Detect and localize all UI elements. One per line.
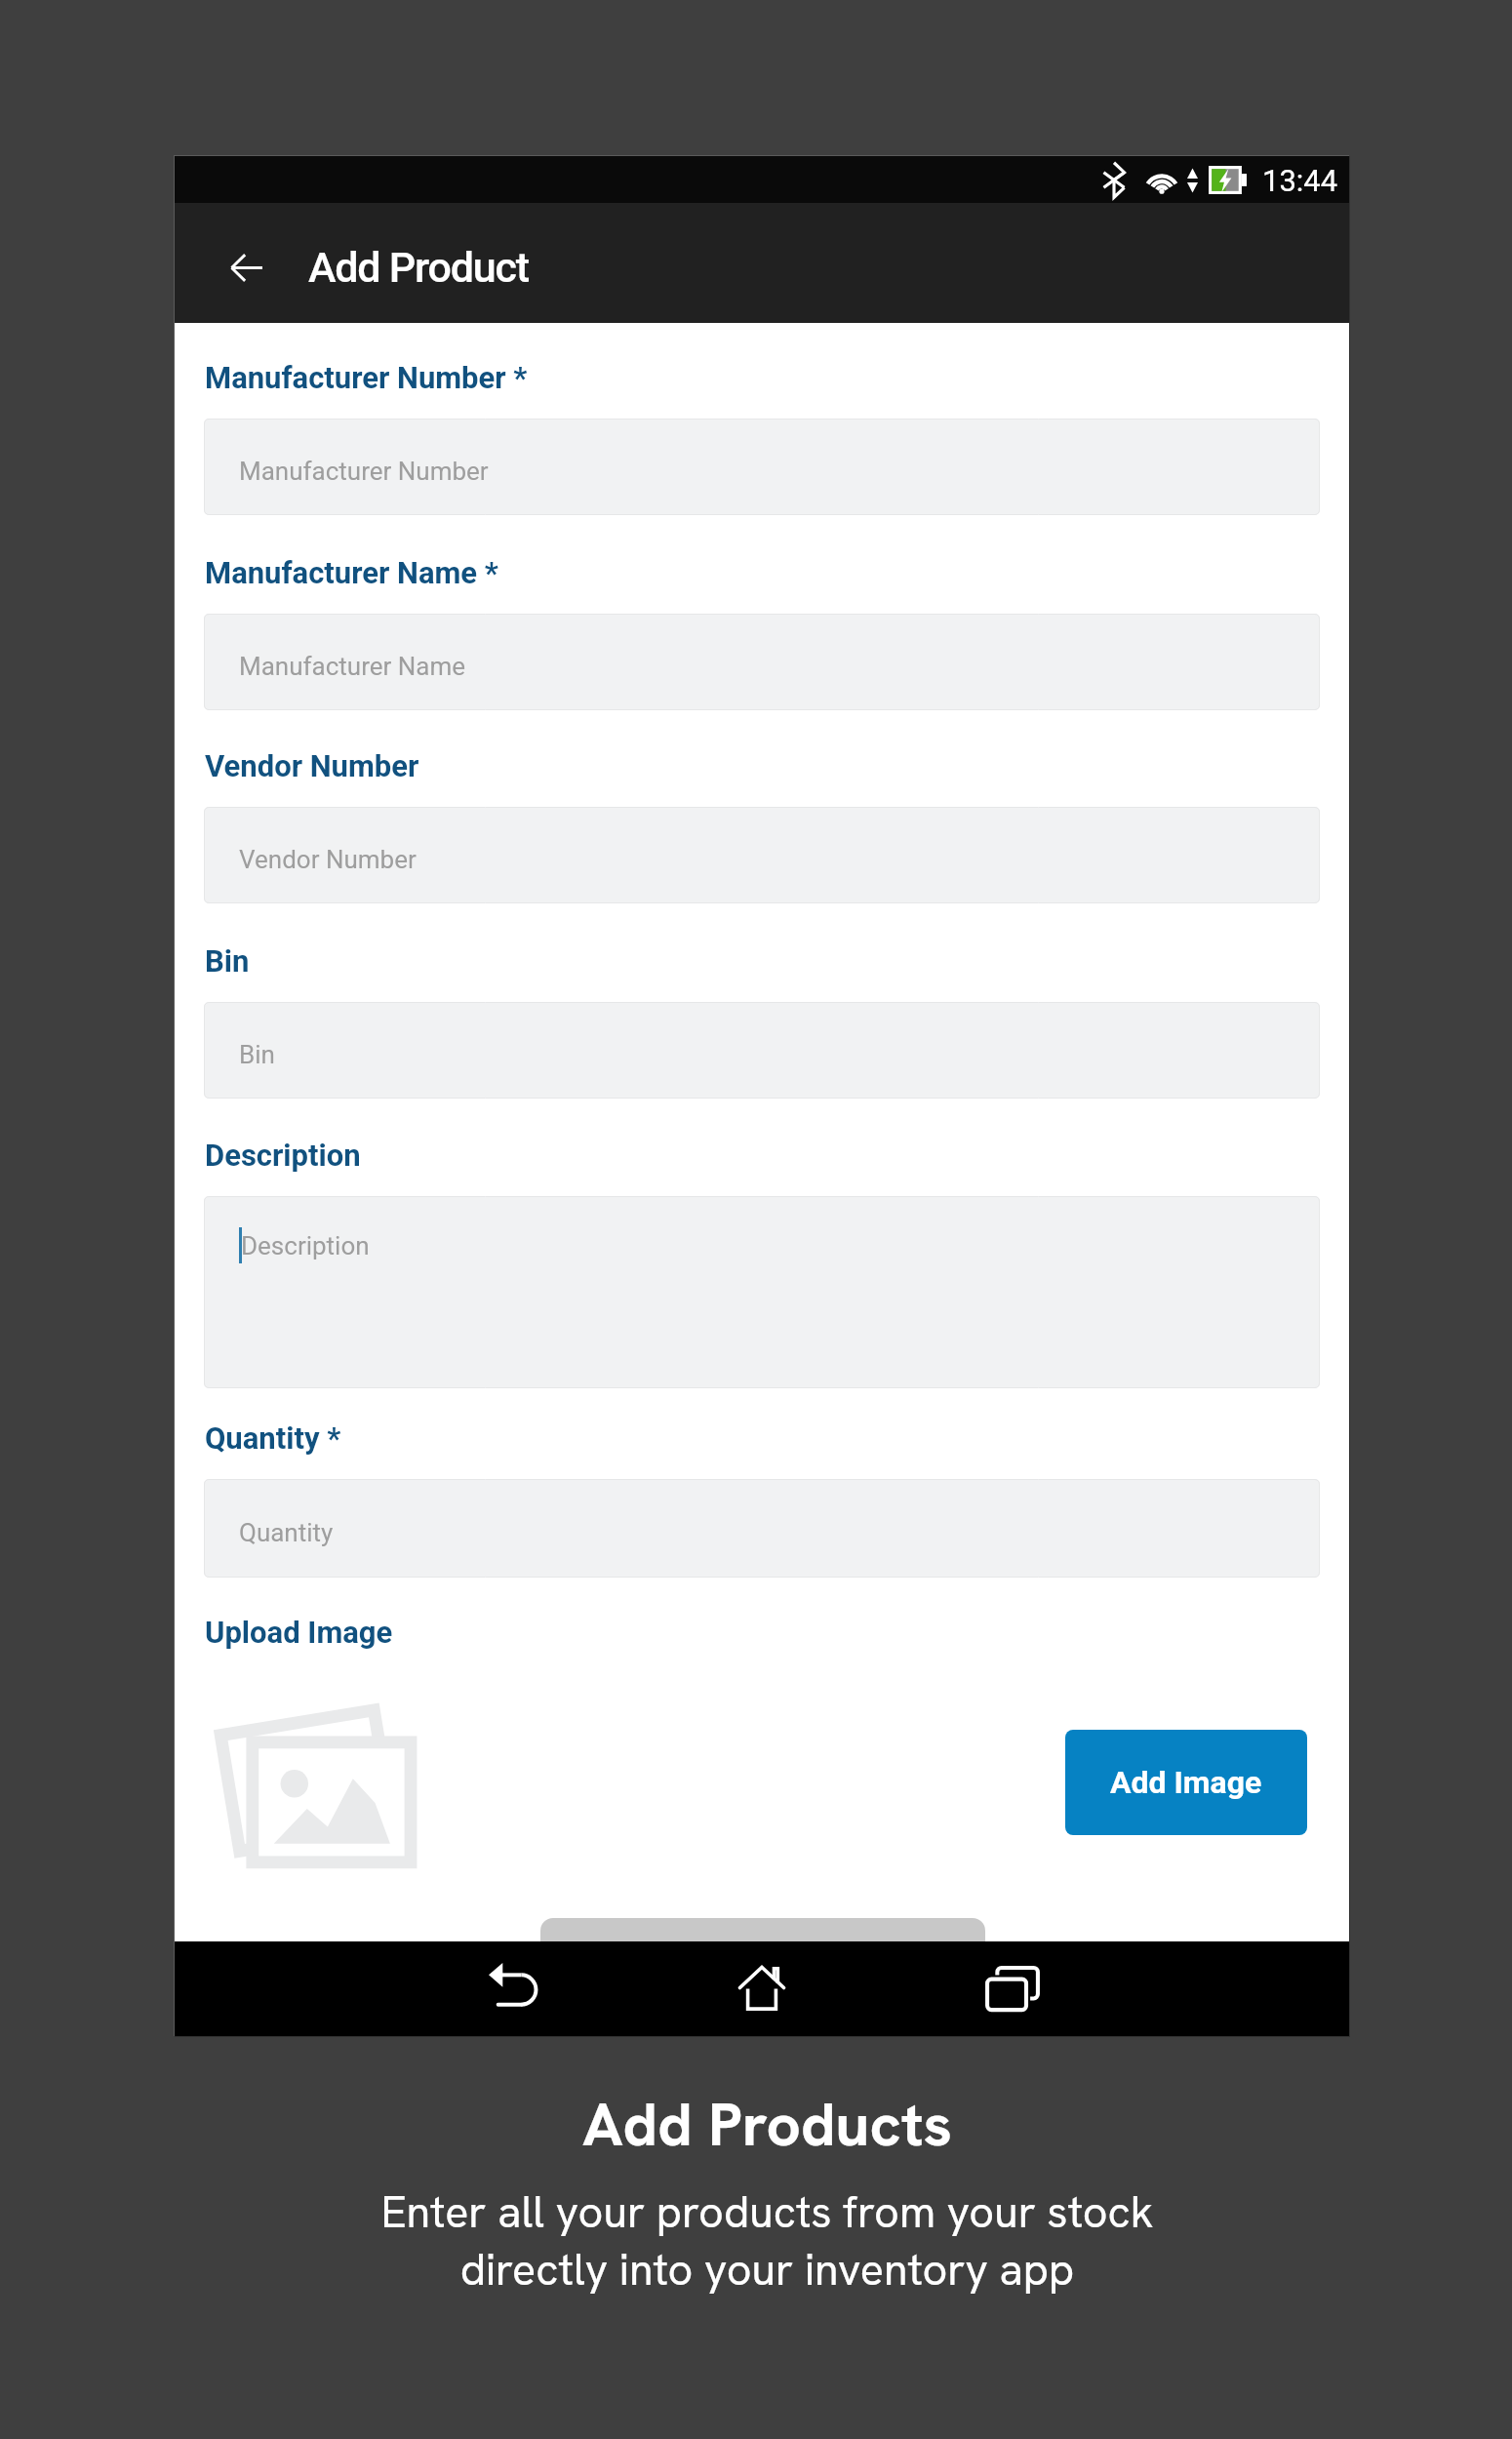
button[interactable]: Add Image <box>1065 1730 1307 1835</box>
staticText: Bin <box>239 1040 275 1069</box>
staticText: Add Image <box>1110 1764 1262 1801</box>
staticText: Quantity * <box>205 1420 341 1456</box>
staticText: Enter all your products from your stock … <box>380 2183 1154 2299</box>
button[interactable]: Manufacturer Number <box>204 419 1320 515</box>
button[interactable]: Quantity <box>204 1479 1320 1578</box>
staticText: Manufacturer Name * <box>205 555 498 590</box>
staticText: 13:44 <box>1262 163 1338 198</box>
staticText: Add Products <box>582 2085 952 2164</box>
button[interactable]: Description <box>204 1196 1320 1388</box>
button[interactable]: Back <box>463 1941 562 2035</box>
staticText: Vendor Number <box>205 748 419 783</box>
staticText: Quantity <box>239 1518 334 1547</box>
staticText: Manufacturer Number * <box>205 360 528 395</box>
staticText: Add Product <box>308 243 529 292</box>
staticText: Upload Image <box>205 1615 393 1650</box>
button[interactable]: Manufacturer Name <box>204 614 1320 710</box>
staticText: Vendor Number <box>239 845 417 874</box>
button[interactable]: Bin <box>204 1002 1320 1099</box>
staticText: Description <box>205 1138 361 1173</box>
staticText: Manufacturer Name <box>239 652 466 681</box>
button[interactable]: Home <box>714 1941 810 2035</box>
staticText: Manufacturer Number <box>239 457 489 486</box>
button[interactable]: Vendor Number <box>204 807 1320 903</box>
button[interactable]: Navigate back <box>216 237 276 298</box>
staticText: Description <box>241 1231 370 1260</box>
button[interactable]: Recent apps <box>962 1941 1063 2035</box>
staticText: Bin <box>205 943 250 979</box>
